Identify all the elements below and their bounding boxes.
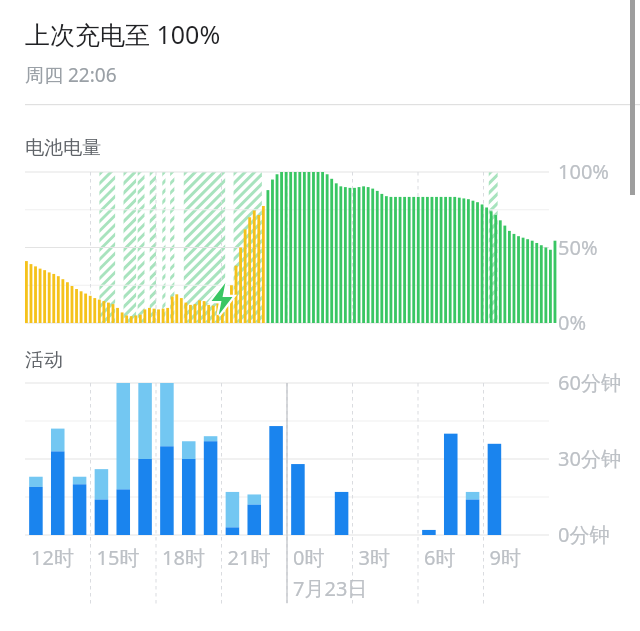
- button[interactable]: Battery usage details: [0, 0, 640, 631]
